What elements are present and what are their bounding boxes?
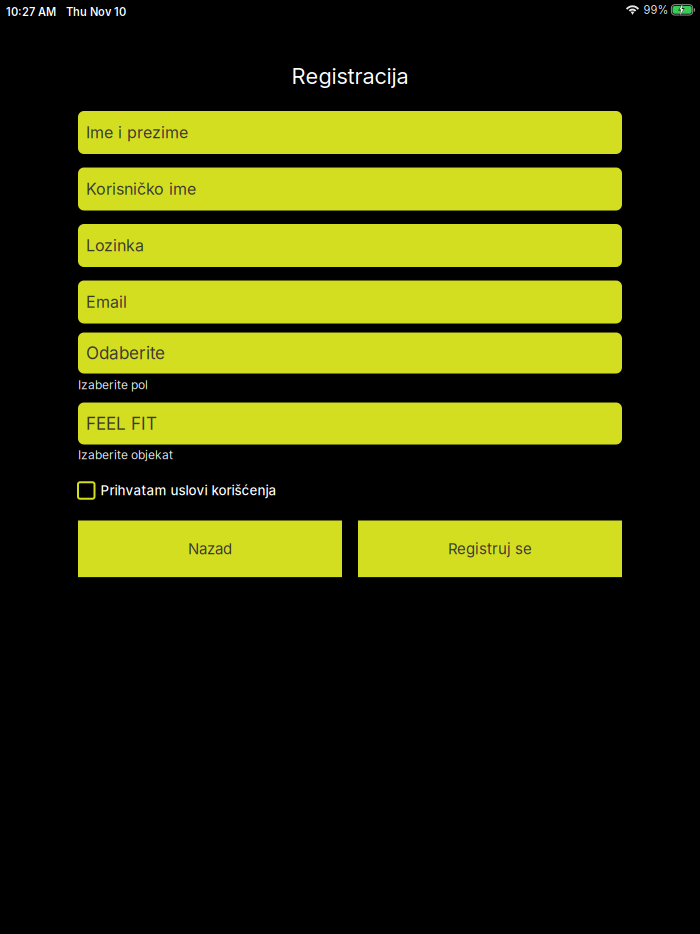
button[interactable]: Lozinka bbox=[78, 224, 622, 267]
button[interactable]: Korisničko ime bbox=[78, 167, 622, 210]
staticText: Korisničko ime bbox=[86, 179, 196, 199]
staticText: Email bbox=[86, 292, 127, 312]
staticText: Registracija bbox=[291, 63, 408, 89]
button[interactable]: FEEL FIT bbox=[78, 402, 622, 444]
staticText: Thu Nov 10 bbox=[66, 5, 126, 19]
staticText: FEEL FIT bbox=[86, 413, 157, 434]
staticText: Odaberite bbox=[86, 343, 165, 363]
button[interactable]: Email bbox=[78, 280, 622, 323]
staticText: Prihvatam uslovi korišćenja bbox=[100, 482, 276, 498]
staticText: 10:27 AM bbox=[6, 5, 56, 19]
button[interactable]: Odaberite bbox=[78, 332, 622, 373]
staticText: Izaberite pol bbox=[78, 378, 148, 392]
staticText: Ime i prezime bbox=[86, 123, 188, 142]
button[interactable]: Nazad bbox=[78, 520, 342, 577]
button[interactable]: Registruj se bbox=[358, 520, 622, 577]
staticText: 99% bbox=[643, 3, 668, 17]
button[interactable]: Ime i prezime bbox=[78, 111, 622, 154]
staticText: Nazad bbox=[188, 540, 232, 558]
button[interactable]: Prihvatam uslovi korišćenja bbox=[78, 479, 622, 501]
staticText: Izaberite objekat bbox=[78, 448, 173, 462]
staticText: Registruj se bbox=[448, 540, 532, 558]
staticText: Lozinka bbox=[86, 236, 144, 255]
